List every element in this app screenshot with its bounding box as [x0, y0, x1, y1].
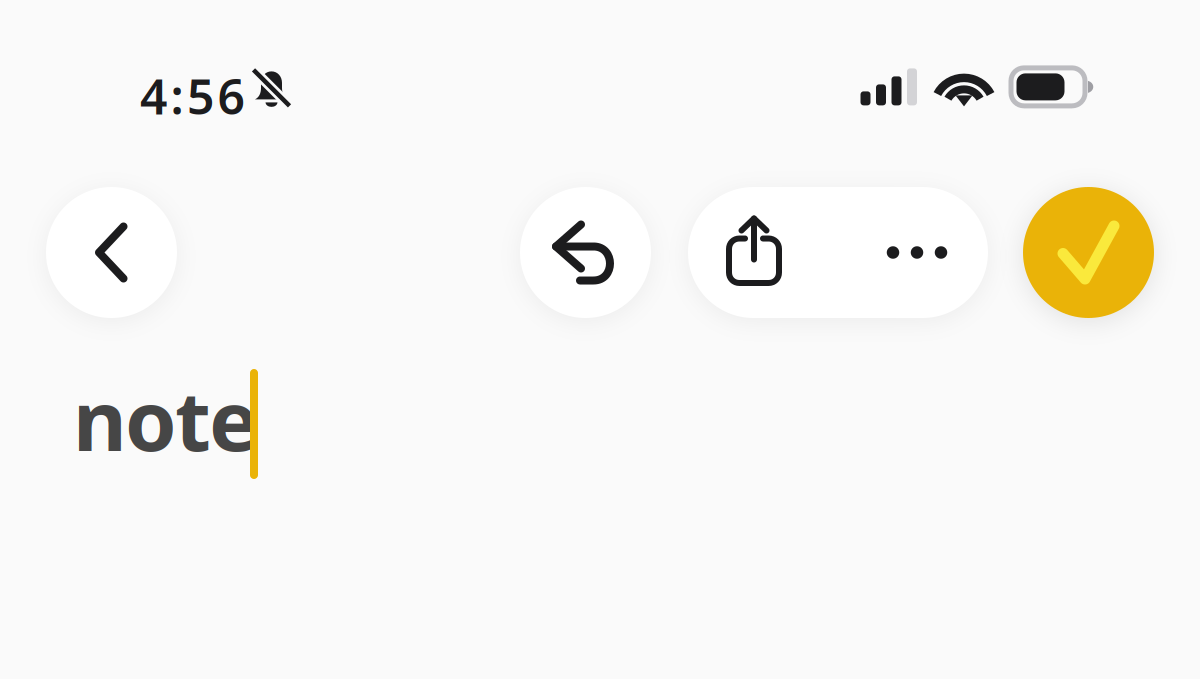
button[interactable]: Undo — [520, 187, 651, 318]
button[interactable]: Done — [1023, 187, 1154, 318]
staticText: 4:56 — [140, 64, 244, 128]
staticText: note — [73, 364, 258, 474]
button[interactable]: Share — [688, 187, 838, 318]
button[interactable]: Back — [46, 187, 177, 318]
button[interactable]: More options — [838, 187, 988, 318]
